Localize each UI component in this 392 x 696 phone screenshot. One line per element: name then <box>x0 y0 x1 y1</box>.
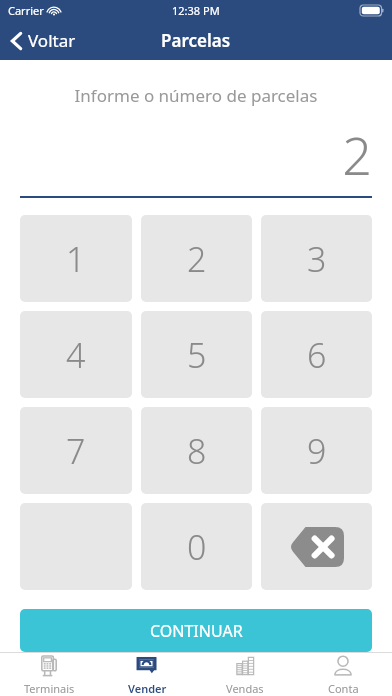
button[interactable]: Vender <box>98 653 196 696</box>
button[interactable]: 1 <box>20 215 132 302</box>
button[interactable]: 8 <box>141 407 252 494</box>
staticText: Vendas <box>226 681 264 696</box>
staticText: Voltar <box>28 29 76 52</box>
button[interactable]: 9 <box>261 407 372 494</box>
button[interactable]: 4 <box>20 311 132 398</box>
button[interactable]: 5 <box>141 311 252 398</box>
staticText: Conta <box>328 681 359 696</box>
staticText: 1 <box>66 236 86 282</box>
button[interactable]: Backspace <box>261 503 372 590</box>
staticText: Terminais <box>24 681 75 696</box>
staticText: Informe o número de parcelas <box>0 84 392 107</box>
staticText: 4 <box>66 332 86 378</box>
staticText: CONTINUAR <box>150 620 243 642</box>
button[interactable]: Vendas <box>196 653 294 696</box>
staticText: 0 <box>187 524 207 570</box>
button[interactable]: Voltar <box>0 25 86 56</box>
button[interactable]: Terminais <box>0 653 98 696</box>
staticText: 8 <box>187 428 207 474</box>
button[interactable]: Conta <box>294 653 392 696</box>
button[interactable]: 6 <box>261 311 372 398</box>
staticText: 7 <box>66 428 86 474</box>
staticText: Parcelas <box>161 29 231 52</box>
staticText: 3 <box>307 236 327 282</box>
staticText: 5 <box>187 332 207 378</box>
staticText: Carrier <box>8 3 44 18</box>
staticText: 9 <box>307 428 327 474</box>
staticText: 2 <box>20 119 372 190</box>
button[interactable]: 7 <box>20 407 132 494</box>
staticText: 6 <box>307 332 327 378</box>
staticText: 12:38 PM <box>172 3 220 18</box>
button[interactable]: 0 <box>141 503 252 590</box>
staticText: 2 <box>187 236 207 282</box>
staticText: Vender <box>128 681 167 696</box>
button[interactable]: 2 <box>141 215 252 302</box>
button[interactable]: CONTINUAR <box>20 609 372 652</box>
button[interactable]: 3 <box>261 215 372 302</box>
